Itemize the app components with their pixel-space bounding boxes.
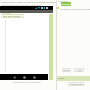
staticText: Lorem ipsum dolor sit amet conse [60,7,90,10]
staticText: Notes [58,77,65,80]
other: Navigation bar [0,74,48,80]
staticText: Talk about blah? [3,15,21,18]
button[interactable]: Download [61,2,71,6]
staticText: Components mod modifier [13,81,41,84]
staticText: Lorem ipsum dolor sit amet consectetur a… [1,0,56,3]
staticText: My App [2,11,11,14]
staticText: Previous [62,69,71,72]
staticText: Overview [58,0,68,3]
button[interactable]: Previous [62,68,71,72]
button[interactable]: Show Notes [68,82,84,86]
button[interactable]: Talk about blah? [1,14,24,18]
staticText: sed do eiusmod tempor incididunt [1,3,42,6]
button[interactable]: Next [74,68,84,72]
staticText: Download [61,3,71,6]
staticText: Show Notes [70,83,83,86]
staticText: Next [77,69,82,72]
